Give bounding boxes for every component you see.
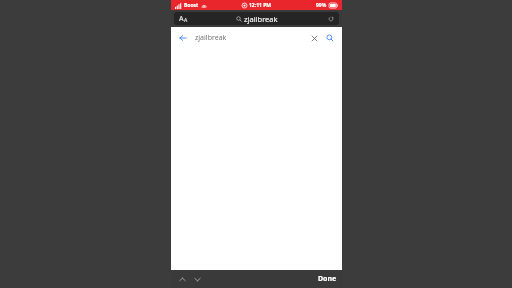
button[interactable]: Page settings [179,14,188,24]
button[interactable]: Clear [308,32,320,44]
button[interactable]: zjailbreak [195,33,308,43]
button[interactable]: Done [318,274,337,284]
staticText: Boost [184,2,199,9]
staticText: Done [318,274,337,284]
staticText: zjailbreak [195,33,227,43]
staticText: A [179,14,184,24]
button[interactable]: Search [324,32,336,44]
staticText: A [184,17,188,24]
button[interactable]: Page settings [174,12,339,25]
staticText: zjailbreak [244,14,278,24]
button[interactable]: Next result [191,273,203,285]
button[interactable]: Back [177,32,189,44]
staticText: 99% [316,2,327,9]
button[interactable]: Previous result [176,273,188,285]
staticText: 12:11 PM [249,2,271,9]
button[interactable]: Reload [327,15,335,23]
